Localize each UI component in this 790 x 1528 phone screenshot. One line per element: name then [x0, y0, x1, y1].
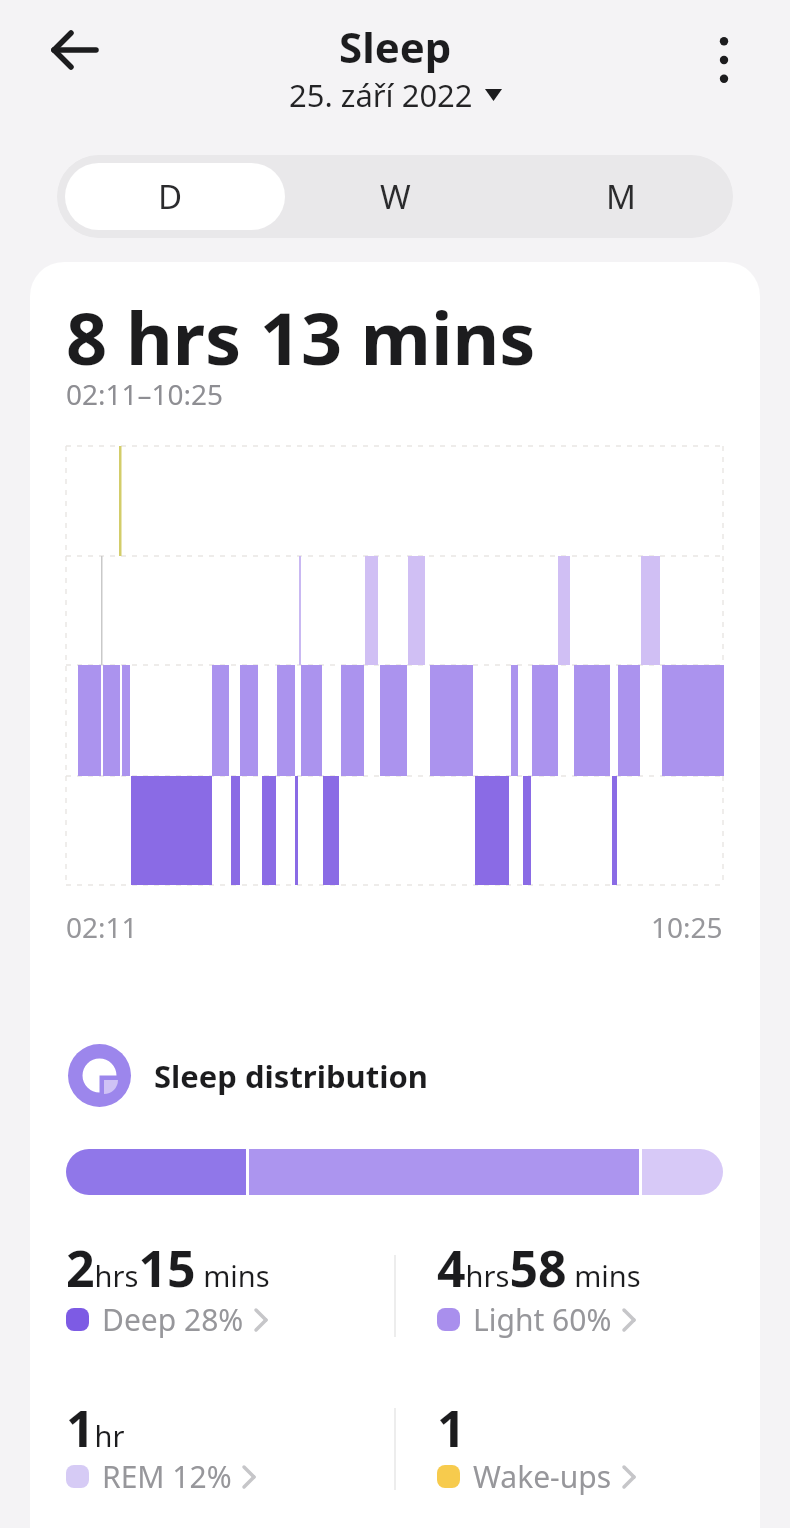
- button[interactable]: 1: [437, 1394, 760, 1514]
- button[interactable]: 4hrs58 mins: [437, 1234, 760, 1354]
- staticText: 2hrs15 mins: [66, 1234, 270, 1302]
- button[interactable]: 2hrs15 mins: [66, 1234, 396, 1354]
- staticText: W: [380, 174, 411, 219]
- staticText: D: [158, 174, 183, 219]
- staticText: M: [606, 174, 636, 219]
- staticText: REM 12%: [102, 1456, 232, 1497]
- button[interactable]: D: [57, 155, 283, 238]
- staticText: 1: [437, 1394, 466, 1462]
- staticText: 1hr: [66, 1394, 125, 1462]
- staticText: 25. září 2022: [289, 74, 473, 116]
- button[interactable]: [40, 20, 110, 80]
- button[interactable]: M: [508, 155, 733, 238]
- staticText: 4hrs58 mins: [437, 1234, 641, 1302]
- staticText: Light 60%: [473, 1299, 612, 1340]
- button[interactable]: W: [283, 155, 508, 238]
- button[interactable]: 25. září 2022: [0, 74, 790, 116]
- staticText: 10:25: [651, 908, 723, 946]
- button[interactable]: 1hr: [66, 1394, 396, 1514]
- button[interactable]: [694, 30, 754, 90]
- staticText: 8 hrs 13 mins: [66, 288, 536, 386]
- staticText: 02:11: [66, 908, 138, 946]
- staticText: Wake-ups: [473, 1456, 612, 1497]
- staticText: Deep 28%: [102, 1299, 244, 1340]
- staticText: Sleep distribution: [154, 1055, 428, 1097]
- staticText: Sleep: [339, 18, 452, 75]
- staticText: 02:11–10:25: [66, 375, 224, 413]
